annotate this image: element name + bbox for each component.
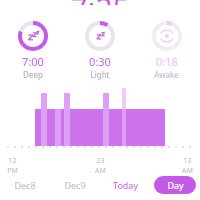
staticText: 0:18 — [156, 54, 178, 69]
staticText: Deep — [23, 69, 43, 80]
staticText: 7:25 — [0, 0, 200, 5]
button[interactable]: Light sleep — [66, 21, 133, 80]
staticText: 7:00 — [22, 54, 44, 69]
staticText: PM — [7, 166, 18, 176]
staticText: 12 — [183, 156, 192, 166]
button[interactable]: Day — [154, 176, 196, 194]
staticText: Today — [113, 179, 138, 191]
staticText: AM — [95, 166, 106, 176]
staticText: Light — [90, 69, 110, 80]
staticText: 0:30 — [89, 54, 111, 69]
staticText: Awake — [154, 69, 179, 80]
button[interactable]: Today — [100, 172, 150, 198]
button[interactable]: Deep sleep — [0, 21, 66, 80]
button[interactable]: Dec8 — [0, 172, 50, 198]
button[interactable]: Dec9 — [50, 172, 100, 198]
staticText: AM — [182, 166, 193, 176]
button[interactable]: Awake — [133, 21, 200, 80]
staticText: Day — [167, 179, 184, 191]
staticText: 12 — [8, 156, 17, 166]
staticText: 23 — [96, 156, 105, 166]
staticText: Dec9 — [64, 179, 86, 191]
staticText: Dec8 — [14, 179, 36, 191]
